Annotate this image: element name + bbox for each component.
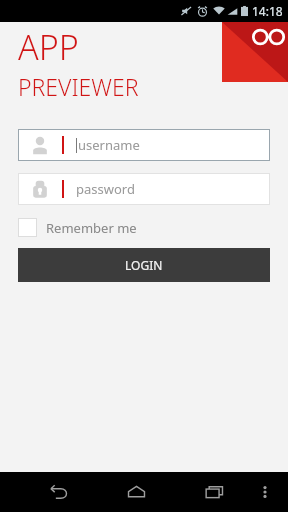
button[interactable]: Back — [38, 472, 78, 512]
button[interactable]: LOGIN — [18, 248, 270, 282]
button[interactable]: More options — [248, 475, 282, 509]
button[interactable]: Home — [116, 472, 156, 512]
button[interactable]: password — [18, 173, 270, 205]
button[interactable]: Remember me — [18, 218, 137, 237]
staticText: LOGIN — [125, 257, 163, 273]
staticText: 14:18 — [252, 3, 283, 19]
button[interactable]: App logo — [222, 22, 288, 82]
staticText: APP — [18, 24, 79, 70]
button[interactable]: Recent apps — [194, 472, 234, 512]
staticText: Remember me — [46, 219, 137, 237]
staticText: password — [76, 180, 135, 198]
staticText: PREVIEWER — [18, 71, 139, 102]
button[interactable]: username — [18, 129, 270, 161]
staticText: username — [78, 136, 140, 154]
